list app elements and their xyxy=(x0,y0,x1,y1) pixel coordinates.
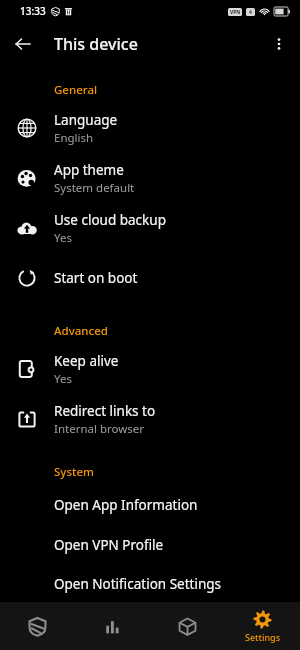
staticText: Open VPN Profile xyxy=(54,536,164,554)
button[interactable]: Language xyxy=(0,103,300,153)
button[interactable]: Keep alive xyxy=(0,344,300,394)
staticText: Open App Information xyxy=(54,496,198,514)
staticText: System default xyxy=(54,180,135,196)
staticText: Start on boot xyxy=(54,269,138,287)
staticText: General xyxy=(54,82,98,98)
button[interactable]: Protection xyxy=(0,602,75,650)
button[interactable]: Open App Information xyxy=(0,485,300,525)
button[interactable]: Apps xyxy=(150,602,225,650)
button[interactable]: Start on boot xyxy=(0,253,300,303)
staticText: Yes xyxy=(54,371,72,387)
staticText: Open Notification Settings xyxy=(54,575,222,593)
staticText: Yes xyxy=(54,230,72,246)
staticText: Internal browser xyxy=(54,421,145,437)
button[interactable]: Back xyxy=(8,29,38,59)
button[interactable]: Settings xyxy=(225,602,300,650)
staticText: Redirect links to xyxy=(54,402,156,420)
button[interactable]: Redirect links to xyxy=(0,394,300,444)
staticText: 13:33 xyxy=(20,4,46,18)
button[interactable]: Open Notification Settings xyxy=(0,565,300,602)
button[interactable]: App theme xyxy=(0,153,300,203)
staticText: 4 xyxy=(249,9,252,16)
staticText: English xyxy=(54,130,94,146)
staticText: Use cloud backup xyxy=(54,211,166,229)
staticText: Advanced xyxy=(54,323,108,339)
staticText: Language xyxy=(54,111,118,129)
button[interactable]: More options xyxy=(264,29,294,59)
staticText: System xyxy=(54,464,94,480)
staticText: This device xyxy=(54,33,138,55)
staticText: Keep alive xyxy=(54,352,119,370)
button[interactable]: Statistics xyxy=(75,602,150,650)
staticText: App theme xyxy=(54,161,124,179)
button[interactable]: Open VPN Profile xyxy=(0,525,300,565)
staticText: Settings xyxy=(245,631,281,643)
staticText: VPN xyxy=(230,9,241,16)
button[interactable]: Use cloud backup xyxy=(0,203,300,253)
